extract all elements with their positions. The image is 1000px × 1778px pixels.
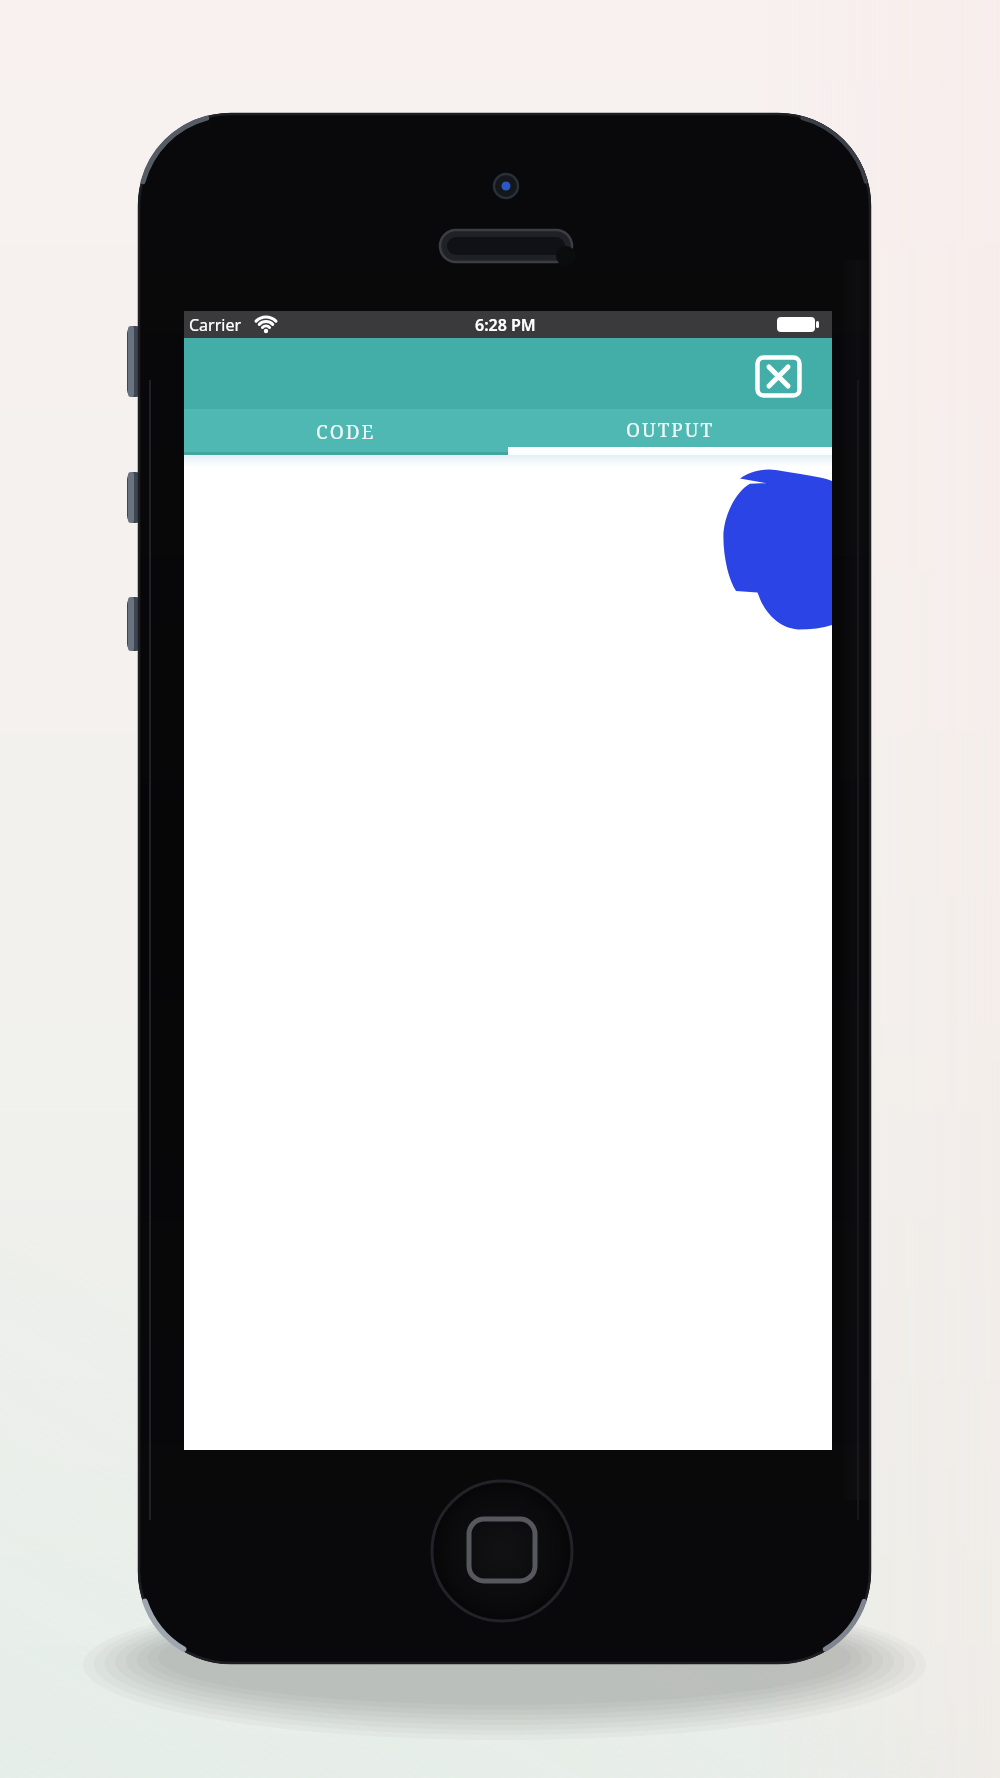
- button[interactable]: OUTPUT: [508, 409, 832, 455]
- staticText: OUTPUT: [626, 417, 715, 443]
- staticText: 6:28 PM: [475, 314, 536, 336]
- staticText: CODE: [316, 419, 376, 445]
- staticText: Carrier: [189, 314, 242, 336]
- button[interactable]: [755, 355, 802, 398]
- button[interactable]: CODE: [184, 409, 508, 455]
